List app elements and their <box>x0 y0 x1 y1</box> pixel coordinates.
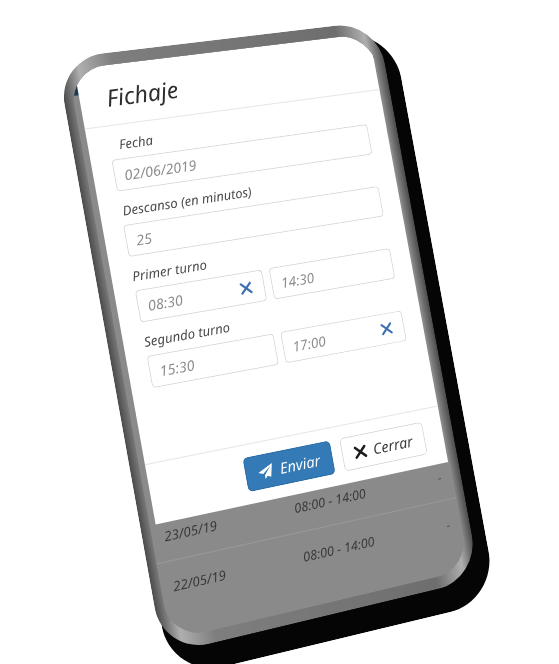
staticText: Fichaje <box>103 73 181 113</box>
staticText: 22/05/19 <box>171 565 228 596</box>
button[interactable]: 02/06/2019 <box>111 124 373 192</box>
staticText: Cerrar <box>371 431 415 458</box>
staticText: 23/05/19 <box>162 516 219 546</box>
button[interactable]: Borrar hora <box>377 319 396 339</box>
staticText: Primer turno <box>131 255 209 285</box>
staticText: Descanso (en minutos) <box>121 182 253 220</box>
button[interactable]: 25 <box>123 186 384 257</box>
staticText: Segundo turno <box>142 318 232 351</box>
staticText: 02/06/2019 <box>123 132 362 184</box>
staticText: Fecha <box>117 131 155 153</box>
button[interactable]: 14:30 <box>268 248 395 300</box>
staticText: 17:00 <box>291 322 380 356</box>
button[interactable]: 17:00 <box>280 310 407 363</box>
staticText: - <box>445 517 451 532</box>
staticText: 08:00 - 14:00 <box>225 516 448 583</box>
staticText: 08:00 - 14:00 <box>216 469 439 534</box>
staticText: 14:30 <box>279 256 385 292</box>
button[interactable]: Enviar <box>242 440 336 492</box>
staticText: Enviar <box>278 450 322 478</box>
button[interactable]: 15:30 <box>146 333 279 388</box>
button[interactable]: Cerrar <box>339 422 428 472</box>
staticText: 15:30 <box>158 342 268 380</box>
staticText: 08:30 <box>146 281 239 315</box>
staticText: 25 <box>134 194 374 250</box>
button[interactable]: Borrar hora <box>236 278 256 298</box>
button[interactable]: 08:30 <box>135 269 267 323</box>
staticText: - <box>436 470 443 485</box>
